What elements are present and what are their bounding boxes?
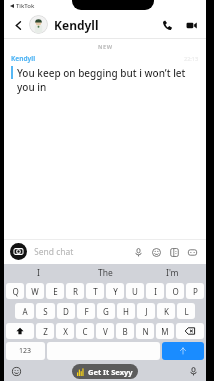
staticText: R	[73, 286, 78, 297]
button[interactable]: E	[46, 283, 64, 299]
staticText: O	[172, 286, 179, 297]
staticText: I'm	[166, 267, 179, 279]
button[interactable]: H	[117, 303, 135, 319]
button[interactable]: X	[56, 323, 74, 339]
button[interactable]: C	[76, 323, 94, 339]
staticText: J	[145, 306, 148, 317]
staticText: V	[103, 326, 108, 337]
staticText: I	[37, 267, 40, 279]
staticText: L	[184, 306, 189, 317]
button[interactable]: B	[116, 323, 134, 339]
button[interactable]: Get It Sexyy	[72, 364, 138, 379]
button[interactable]: Games	[184, 244, 200, 260]
button[interactable]: Video call	[182, 16, 200, 34]
button[interactable]: D	[57, 303, 75, 319]
button[interactable]: Voice note	[130, 244, 146, 260]
button[interactable]: Emoji keyboard	[10, 365, 23, 378]
staticText: N	[142, 326, 149, 337]
staticText: B	[122, 326, 128, 337]
other: Shift	[16, 327, 24, 335]
staticText: E	[53, 286, 58, 297]
button[interactable]: Profile	[29, 15, 48, 34]
staticText: Y	[113, 286, 118, 297]
button[interactable]: J	[137, 303, 155, 319]
button[interactable]: A	[15, 303, 34, 319]
button[interactable]: V	[96, 323, 114, 339]
button[interactable]: Voice input	[187, 365, 200, 378]
button[interactable]: Stickers	[166, 244, 182, 260]
other: Backspace	[185, 326, 195, 336]
staticText: S	[43, 306, 48, 317]
button[interactable]: Kendyll	[54, 17, 99, 33]
staticText: I	[154, 286, 157, 297]
staticText: X	[63, 326, 68, 337]
staticText: Kendyll	[11, 54, 36, 63]
button[interactable]: Z	[36, 323, 54, 339]
button[interactable]: S	[36, 303, 55, 319]
button[interactable]: N	[136, 323, 154, 339]
button[interactable]: W	[26, 283, 44, 299]
button[interactable]: I'm	[139, 264, 206, 281]
button[interactable]: Q	[6, 283, 24, 299]
button[interactable]: Send	[162, 342, 204, 360]
button[interactable]: I	[146, 283, 164, 299]
button[interactable]: Shift	[6, 323, 34, 339]
staticText: G	[103, 306, 109, 317]
button[interactable]: Voice call	[158, 16, 176, 34]
button[interactable]: O	[166, 283, 184, 299]
staticText: NEW	[98, 43, 113, 50]
staticText: D	[63, 306, 69, 317]
button[interactable]: Emoji	[148, 244, 164, 260]
staticText: Z	[43, 326, 48, 337]
button[interactable]: P	[186, 283, 204, 299]
button[interactable]: G	[97, 303, 115, 319]
staticText: A	[22, 306, 28, 317]
button[interactable]: Back	[10, 17, 26, 33]
staticText: P	[193, 286, 198, 297]
staticText: The	[98, 267, 113, 279]
button[interactable]: U	[126, 283, 144, 299]
staticText: C	[82, 326, 88, 337]
button[interactable]: R	[66, 283, 84, 299]
button[interactable]: I	[4, 264, 72, 281]
button[interactable]: Send chat	[34, 244, 130, 259]
staticText: 123	[19, 346, 32, 356]
staticText: Q	[12, 286, 19, 297]
staticText: W	[31, 286, 39, 297]
staticText: 22:13	[184, 55, 199, 62]
button[interactable]: K	[157, 303, 175, 319]
button[interactable]: F	[77, 303, 95, 319]
staticText: Send chat	[34, 246, 74, 258]
staticText: F	[84, 306, 89, 317]
staticText: U	[132, 286, 138, 297]
button[interactable]: The	[72, 264, 139, 281]
staticText: TikTok	[16, 2, 35, 10]
button[interactable]: T	[86, 283, 104, 299]
button[interactable]: Y	[106, 283, 124, 299]
staticText: Get It Sexyy	[88, 367, 133, 377]
staticText: H	[123, 306, 129, 317]
button[interactable]: L	[177, 303, 195, 319]
staticText: K	[164, 306, 169, 317]
button[interactable]: You keep on begging but i won’t let you …	[17, 66, 199, 94]
button[interactable]: Camera	[10, 243, 27, 260]
staticText: T	[93, 286, 98, 297]
button[interactable]: 123	[6, 342, 45, 360]
button[interactable]: M	[156, 323, 174, 339]
button[interactable]: Backspace	[176, 323, 204, 339]
staticText: M	[161, 326, 169, 337]
